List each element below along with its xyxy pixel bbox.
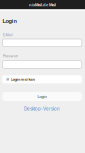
staticText: Passwort xyxy=(3,54,18,58)
button[interactable]: Desktop-Version xyxy=(2,106,82,111)
button[interactable]: Login xyxy=(2,92,82,101)
staticText: E-Mail xyxy=(3,33,13,37)
staticText: nixMail.de Mail xyxy=(29,2,56,7)
staticText: Desktop-Version xyxy=(24,106,60,111)
staticText: Login xyxy=(38,94,47,99)
staticText: Login xyxy=(2,18,16,24)
button[interactable]: Login merken xyxy=(2,75,82,83)
staticText: Login merken xyxy=(11,77,35,82)
